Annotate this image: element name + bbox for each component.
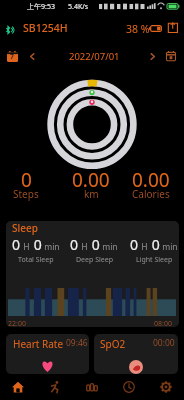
staticText: min <box>160 241 178 253</box>
button[interactable]: Calendar <box>7 51 18 62</box>
button[interactable]: Home <box>0 374 36 400</box>
staticText: H <box>21 241 30 253</box>
staticText: H <box>79 241 88 253</box>
staticText: 0.00 <box>72 167 110 193</box>
staticText: Total Sleep <box>18 255 54 265</box>
staticText: km <box>84 187 99 201</box>
staticText: Sleep <box>12 221 38 235</box>
staticText: Heart Rate <box>13 337 64 351</box>
button[interactable]: SpO2 <box>94 334 178 374</box>
button[interactable]: Exercise <box>36 374 73 400</box>
button[interactable]: Statistics <box>73 374 110 400</box>
staticText: 0 <box>21 167 32 193</box>
staticText: 0 <box>88 235 100 254</box>
staticText: Light Sleep <box>136 255 173 265</box>
staticText: Deep Sleep <box>76 255 113 265</box>
staticText: SB1254H <box>23 21 68 35</box>
staticText: 上午9:53 <box>27 2 55 12</box>
staticText: 7 <box>10 52 15 62</box>
button[interactable]: 0 <box>0 166 56 202</box>
staticText: 09:46 <box>66 337 88 349</box>
button[interactable]: Previous day <box>24 48 40 64</box>
button[interactable]: 0.00 <box>121 166 181 202</box>
button[interactable]: Calendar view <box>166 51 176 61</box>
staticText: 0 <box>12 235 21 254</box>
staticText: 2022/07/01 <box>69 50 120 63</box>
staticText: 0 <box>70 235 79 254</box>
staticText: 5.4K/s <box>68 2 89 12</box>
button[interactable]: Next day <box>144 48 160 64</box>
staticText: min <box>42 241 60 253</box>
button[interactable]: Alarm <box>110 374 147 400</box>
staticText: Calories <box>132 187 170 201</box>
button[interactable]: 0.00 <box>61 166 121 202</box>
staticText: 0 <box>148 235 160 254</box>
button[interactable]: Settings <box>147 374 184 400</box>
button[interactable]: Sleep <box>6 221 179 327</box>
staticText: 08:00 <box>154 319 172 327</box>
staticText: Steps <box>13 187 39 201</box>
staticText: 00:00 <box>153 337 175 349</box>
staticText: min <box>100 241 118 253</box>
button[interactable]: Heart Rate <box>6 334 89 374</box>
staticText: 38 % <box>126 22 150 36</box>
button[interactable]: Share <box>167 22 178 33</box>
staticText: 0.00 <box>132 167 170 193</box>
staticText: 0 <box>130 235 139 254</box>
staticText: 0 <box>30 235 42 254</box>
staticText: 22:00 <box>8 319 26 327</box>
staticText: H <box>139 241 148 253</box>
staticText: SpO2 <box>100 337 126 351</box>
